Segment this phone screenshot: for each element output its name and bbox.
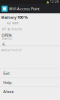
staticText: Help (3, 80, 11, 85)
staticText: channel (2, 37, 13, 40)
button[interactable]: About (0, 87, 60, 96)
staticText: Exit (3, 70, 9, 76)
button[interactable]: Exit (0, 68, 60, 78)
button[interactable]: Help (0, 78, 60, 87)
staticText: 12:28 (50, 0, 59, 4)
staticText: About (3, 89, 13, 94)
staticText: Battery 100 % (1, 15, 28, 20)
staticText: Access Point IP (1, 48, 22, 52)
staticText: 6 (2, 41, 4, 47)
staticText: wifi ap security (2, 27, 22, 31)
staticText: OPEN (2, 32, 12, 38)
staticText: Ap Name (7, 21, 19, 25)
staticText: Wifi Access Point (9, 6, 39, 11)
